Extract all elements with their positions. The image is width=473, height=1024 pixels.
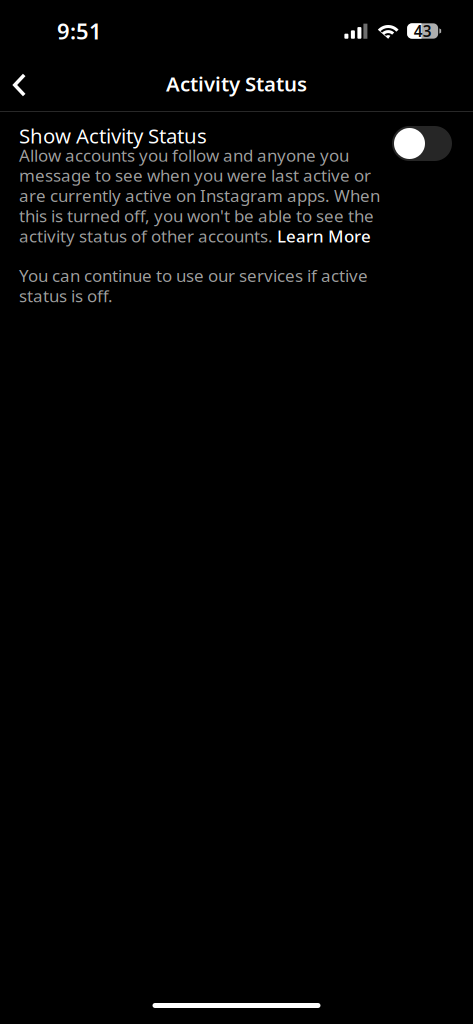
staticText: 9:51 [57, 16, 102, 46]
staticText: 43 [414, 21, 432, 41]
staticText: You can continue to use our services if … [19, 265, 368, 306]
staticText: Activity Status [166, 70, 307, 97]
button[interactable]: Back [0, 60, 39, 106]
staticText: Show Activity Status [19, 122, 207, 149]
staticText: Allow accounts you follow and anyone you… [19, 145, 380, 246]
button[interactable]: Show Activity Status [392, 126, 452, 161]
